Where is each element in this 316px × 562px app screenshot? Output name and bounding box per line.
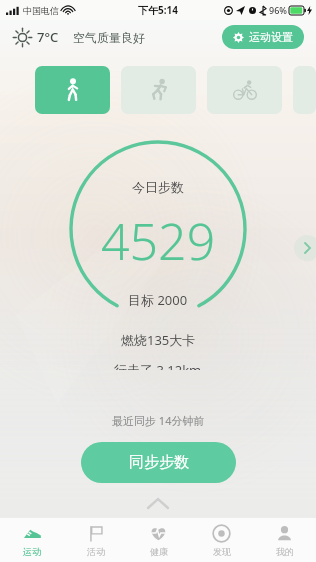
staticText: 运动 xyxy=(23,546,41,557)
staticText: 健康 xyxy=(150,546,168,557)
staticText: 最近同步 14分钟前 xyxy=(112,413,205,428)
staticText: 活动 xyxy=(87,546,105,557)
button[interactable]: Expand xyxy=(141,494,175,512)
staticText: 96% xyxy=(269,4,287,16)
staticText: 7°C xyxy=(37,28,59,46)
button[interactable]: 发现 xyxy=(190,518,253,562)
staticText: 下午5:14 xyxy=(138,3,178,17)
button[interactable]: 健康 xyxy=(127,518,190,562)
button[interactable]: 运动 xyxy=(0,518,64,562)
button[interactable]: Activity xyxy=(207,66,282,114)
staticText: 4529 xyxy=(101,207,216,275)
staticText: 燃烧135大卡 xyxy=(121,331,196,349)
button[interactable]: 运动设置 xyxy=(222,25,304,49)
staticText: 目标 2000 xyxy=(128,291,188,309)
staticText: 空气质量良好 xyxy=(73,30,145,45)
button[interactable]: 活动 xyxy=(64,518,127,562)
button[interactable]: 我的 xyxy=(253,518,316,562)
staticText: 我的 xyxy=(276,546,294,557)
button[interactable]: Next xyxy=(294,235,316,261)
button[interactable]: Activity xyxy=(121,66,196,114)
staticText: 行走了 3.12km xyxy=(114,361,202,370)
staticText: 同步步数 xyxy=(129,453,189,472)
button[interactable]: Walking xyxy=(35,66,110,114)
staticText: 中国电信 xyxy=(23,5,59,16)
staticText: 发现 xyxy=(213,546,231,557)
button[interactable]: Activity xyxy=(293,66,316,114)
staticText: 今日步数 xyxy=(132,179,184,195)
staticText: 运动设置 xyxy=(249,30,293,44)
button[interactable]: 同步步数 xyxy=(81,442,236,483)
